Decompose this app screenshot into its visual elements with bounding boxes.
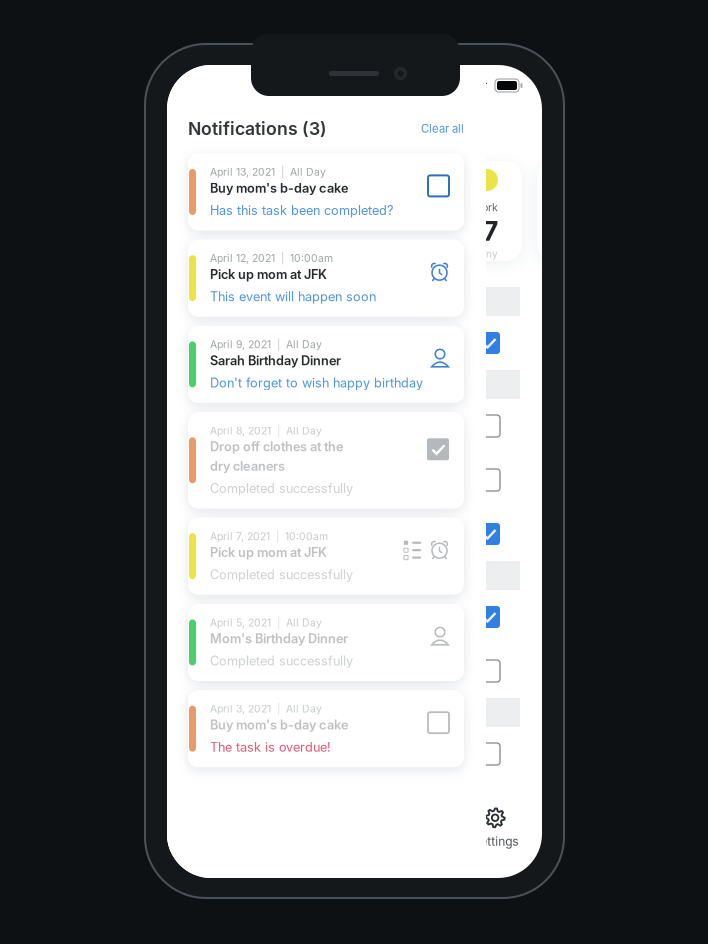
staticText: Sunny <box>468 248 498 260</box>
staticText: Buy mom's b-day cake <box>210 717 348 732</box>
staticText: 10:00am <box>290 252 333 265</box>
staticText: April 8, 2021 <box>210 424 271 437</box>
staticText: April 12, 2021 <box>203 377 277 392</box>
staticText: April 9, 2021 <box>210 338 271 351</box>
staticText: April 13, 2021 <box>210 166 275 178</box>
staticText: This event will happen soon <box>210 289 376 304</box>
staticText: Settings <box>472 834 518 849</box>
button[interactable]: April 8, 2021 <box>188 412 464 509</box>
staticText: New York <box>450 201 498 214</box>
staticText: | <box>275 166 290 178</box>
button[interactable]: April 12, 2021 <box>188 239 464 317</box>
staticText: Notifications (3) <box>188 118 327 139</box>
button[interactable]: April 3, 2021 <box>188 690 464 767</box>
button[interactable]: April 5, 2021 <box>188 604 464 681</box>
staticText: April 13, 2021 <box>203 294 277 309</box>
staticText: April 7, 2021 <box>210 530 270 543</box>
staticText: Completed successfully <box>210 653 353 668</box>
button[interactable]: April 13, 2021 <box>188 153 464 230</box>
staticText: | <box>271 702 286 715</box>
staticText: | <box>271 424 286 437</box>
staticText: April 5, 2021 <box>210 616 271 629</box>
staticText: All Day <box>286 338 322 351</box>
staticText: All Day <box>286 424 322 437</box>
staticText: Mom's Birthday Dinner <box>210 631 348 646</box>
staticText: Has this task been completed? <box>210 203 393 218</box>
staticText: 10:00am <box>285 530 328 543</box>
staticText: All Day <box>286 702 322 715</box>
staticText: 17 <box>472 215 498 247</box>
staticText: | <box>270 530 285 543</box>
staticText: | <box>275 252 290 265</box>
staticText: Pick up mom at JFK <box>210 545 327 560</box>
staticText: | <box>271 338 286 351</box>
staticText: Completed successfully <box>210 481 353 496</box>
staticText: Don't forget to wish happy birthday <box>210 375 423 390</box>
staticText: April 12, 2021 <box>210 252 275 265</box>
staticText: All Day <box>286 616 322 629</box>
button[interactable]: Settings <box>448 802 542 854</box>
staticText: Completed successfully <box>210 567 353 582</box>
staticText: Pick up mom at JFK <box>210 267 327 282</box>
button[interactable]: April 9, 2021 <box>188 326 464 403</box>
staticText: The task is overdue! <box>210 739 331 755</box>
button[interactable]: Clear all <box>421 122 464 135</box>
staticText: April 3, 2021 <box>210 702 271 715</box>
staticText: April 8, 2021 <box>203 705 272 720</box>
staticText: | <box>271 616 286 629</box>
staticText: All Day <box>290 166 326 178</box>
staticText: Buy mom's b-day cake <box>210 180 348 196</box>
staticText: Sarah Birthday Dinner <box>210 353 341 368</box>
button[interactable]: April 7, 2021 <box>188 518 464 595</box>
staticText: April 9, 2021 <box>203 568 272 583</box>
staticText: Drop off clothes at the <box>210 439 343 454</box>
staticText: dry cleaners <box>210 458 285 474</box>
staticText: Clear all <box>421 122 464 135</box>
